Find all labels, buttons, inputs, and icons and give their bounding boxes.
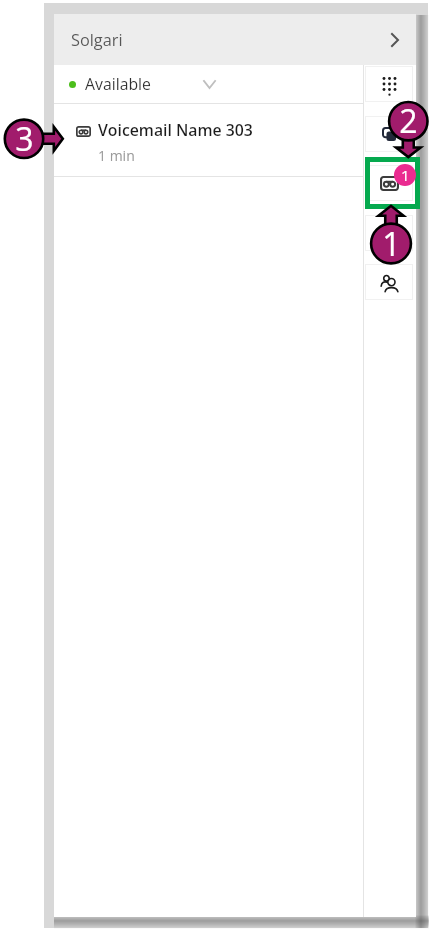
staticText: 1: [401, 165, 410, 185]
button[interactable]: Solgari: [54, 14, 416, 65]
button[interactable]: Voicemail: [365, 165, 413, 201]
staticText: Available: [85, 73, 151, 95]
button[interactable]: Dialpad: [365, 66, 413, 102]
staticText: 1: [382, 222, 401, 266]
button[interactable]: Voicemail Name 303: [54, 104, 363, 176]
staticText: 2: [399, 99, 418, 143]
staticText: Solgari: [71, 29, 123, 51]
button[interactable]: Messages: [365, 116, 413, 152]
staticText: Voicemail Name 303: [98, 119, 253, 141]
staticText: 3: [15, 117, 34, 161]
button[interactable]: Available: [54, 65, 363, 103]
staticText: 1 min: [98, 146, 135, 165]
button[interactable]: Call history: [365, 215, 413, 251]
button[interactable]: Contacts: [365, 264, 413, 300]
